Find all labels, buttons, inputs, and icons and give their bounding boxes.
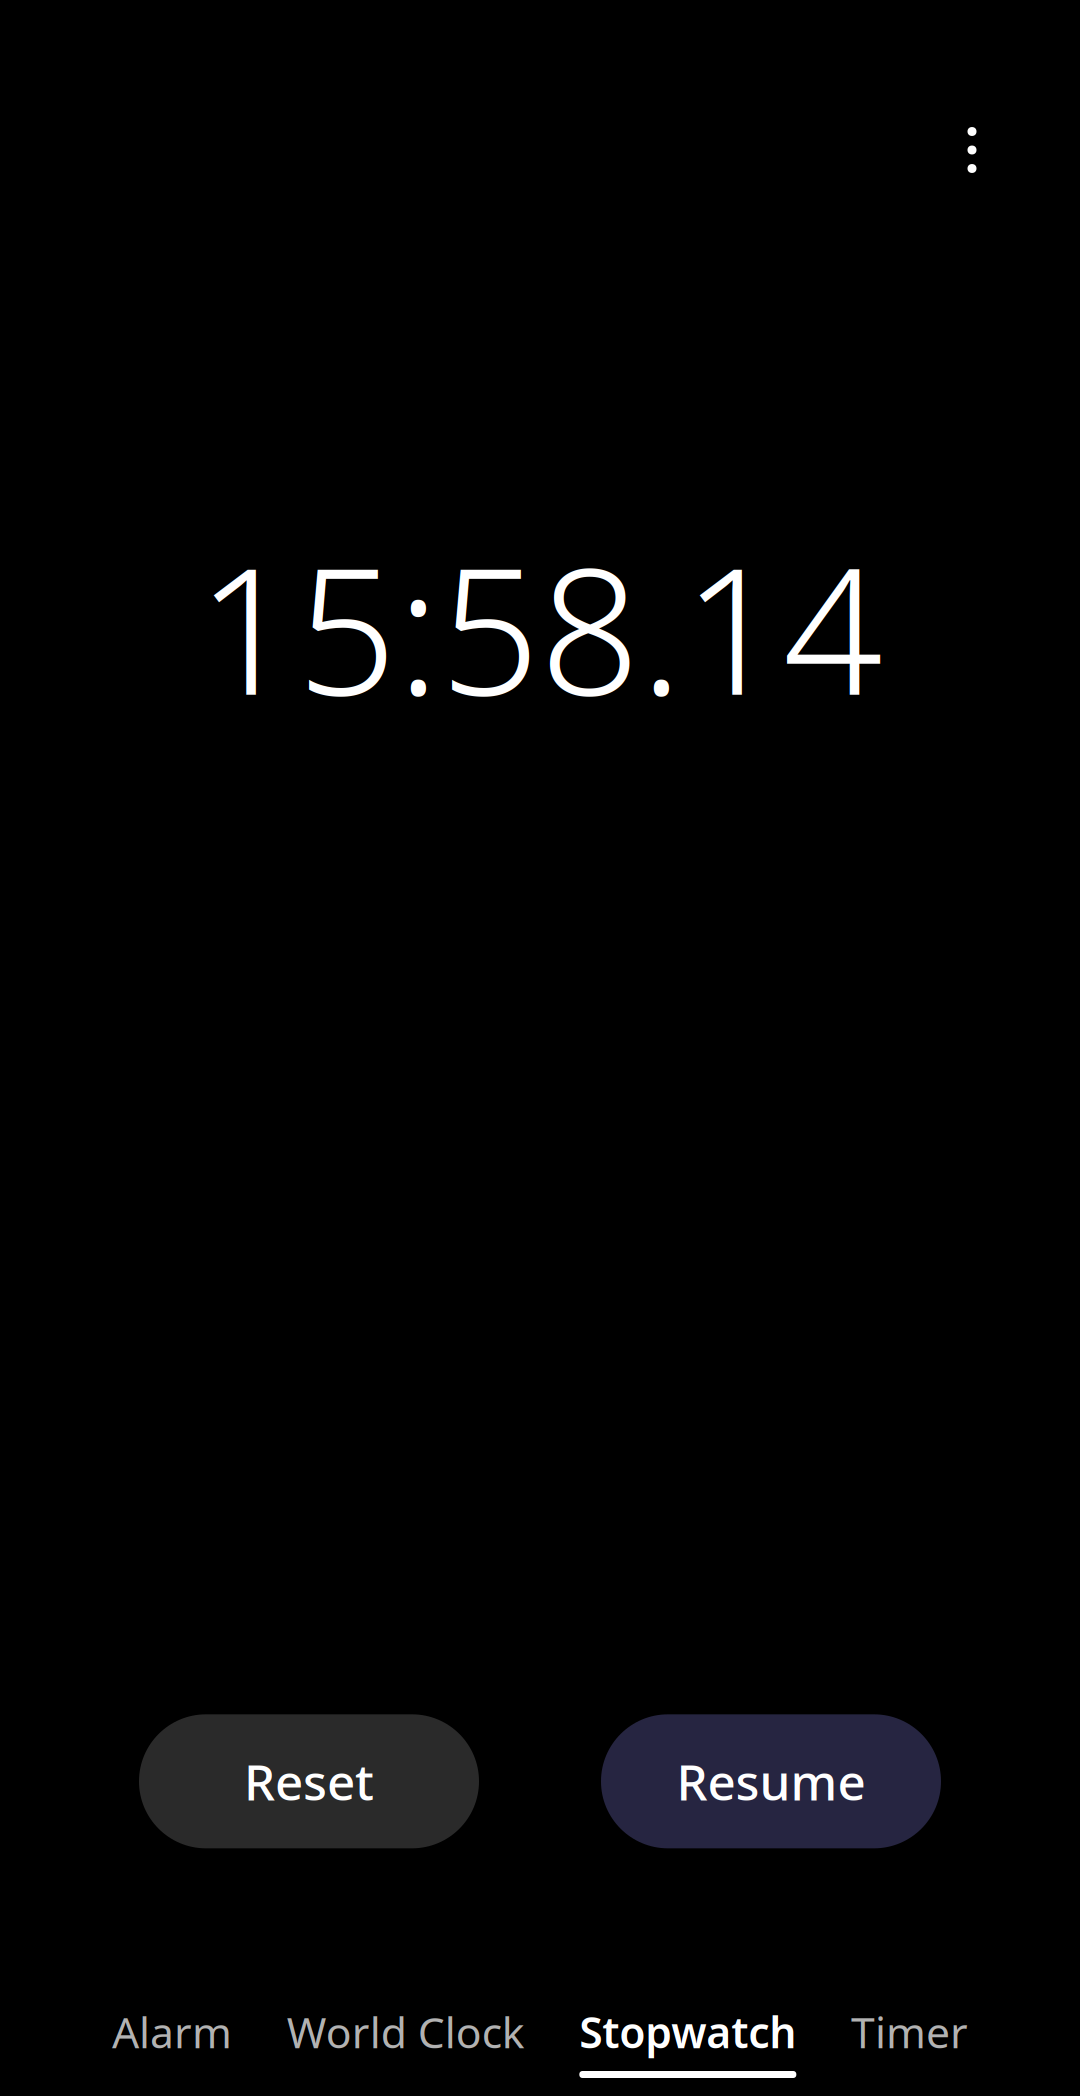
button[interactable]: Timer	[845, 2003, 974, 2078]
button[interactable]: Stopwatch	[573, 2003, 802, 2078]
button[interactable]: More options	[924, 102, 1020, 198]
button[interactable]: Alarm	[106, 2003, 238, 2078]
staticText: Alarm	[112, 2003, 232, 2060]
staticText: Timer	[851, 2003, 968, 2060]
button[interactable]: World Clock	[281, 2003, 531, 2078]
staticText: Stopwatch	[579, 2003, 796, 2060]
staticText: Resume	[676, 1749, 865, 1814]
button[interactable]: Reset	[139, 1714, 479, 1848]
staticText: Reset	[244, 1749, 374, 1814]
staticText: 15:58.14	[197, 511, 883, 743]
button[interactable]: Resume	[601, 1714, 941, 1848]
staticText: World Clock	[287, 2003, 525, 2060]
